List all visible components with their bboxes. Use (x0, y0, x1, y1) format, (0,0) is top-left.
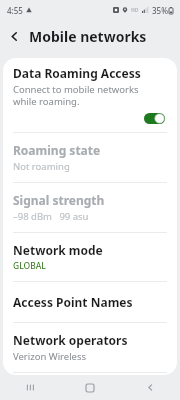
staticText: 4:55 (7, 5, 23, 16)
staticText: Not roaming (13, 160, 70, 173)
button[interactable]: Signal strength (3, 183, 177, 232)
button[interactable]: Access Point Names (3, 282, 177, 322)
button[interactable]: Data roaming access toggle, on (142, 111, 167, 126)
staticText: Network mode (13, 242, 103, 258)
button[interactable]: Back (0, 22, 29, 51)
staticText: Signal strength (13, 192, 105, 208)
staticText: Access Point Names (13, 294, 133, 310)
staticText: HD (131, 7, 139, 14)
staticText: Mobile networks (29, 27, 147, 46)
staticText: Connect to mobile networks while roaming… (13, 83, 139, 108)
staticText: 35% (152, 5, 168, 16)
staticText: Verizon Wireless (13, 350, 87, 363)
staticText: Roaming state (13, 142, 101, 158)
staticText: –98 dBm 99 asu (13, 210, 89, 223)
button[interactable]: Data Roaming Access (3, 58, 177, 132)
button[interactable]: Network mode (3, 233, 177, 281)
button[interactable]: Home (60, 375, 120, 400)
staticText: Network operators (13, 332, 128, 348)
staticText: GLOBAL (13, 260, 46, 272)
button[interactable]: Roaming state (3, 133, 177, 182)
button[interactable]: Network operators (3, 323, 177, 372)
button[interactable]: Network extenders (3, 373, 177, 375)
button[interactable]: Recent apps (0, 375, 60, 400)
staticText: Data Roaming Access (13, 65, 141, 81)
button[interactable]: Back (120, 375, 180, 400)
